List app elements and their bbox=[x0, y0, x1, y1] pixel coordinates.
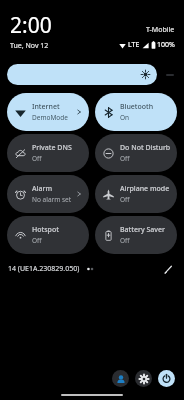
staticText: Off bbox=[120, 236, 130, 245]
staticText: LTE bbox=[128, 40, 140, 50]
staticText: Private DNS bbox=[32, 143, 72, 153]
staticText: No alarm set bbox=[32, 195, 72, 204]
button[interactable]: Do Not Disturb bbox=[95, 134, 177, 172]
staticText: Alarm bbox=[32, 184, 53, 194]
staticText: 14 (UE1A.230829.050) bbox=[8, 264, 80, 274]
staticText: T-Mobile bbox=[146, 25, 175, 35]
staticText: Internet bbox=[32, 102, 60, 112]
button[interactable]: User bbox=[112, 370, 129, 387]
staticText: DemoMode bbox=[32, 113, 68, 122]
staticText: 100% bbox=[157, 40, 175, 50]
button[interactable]: Airplane mode bbox=[95, 175, 177, 213]
button[interactable]: Private DNS bbox=[7, 134, 89, 172]
staticText: Off bbox=[120, 195, 130, 204]
button[interactable]: Power bbox=[158, 370, 175, 387]
staticText: Airplane mode bbox=[120, 184, 170, 194]
staticText: Do Not Disturb bbox=[120, 143, 171, 153]
button[interactable]: Hotspot bbox=[7, 216, 89, 254]
button[interactable]: Brightness bbox=[7, 64, 157, 85]
staticText: 2:00 bbox=[10, 11, 52, 40]
staticText: Off bbox=[32, 236, 42, 245]
button[interactable]: Settings bbox=[135, 370, 152, 387]
staticText: On bbox=[120, 113, 130, 122]
button[interactable]: Bluetooth bbox=[95, 93, 177, 131]
staticText: Battery Saver bbox=[120, 225, 165, 235]
staticText: Off bbox=[120, 154, 130, 163]
button[interactable]: Alarm bbox=[7, 175, 89, 213]
staticText: Bluetooth bbox=[120, 102, 154, 112]
staticText: Hotspot bbox=[32, 225, 59, 235]
button[interactable]: Internet bbox=[7, 93, 89, 131]
button[interactable]: Edit tiles bbox=[160, 261, 176, 277]
staticText: Tue, Nov 12 bbox=[10, 41, 49, 51]
button[interactable]: Battery Saver bbox=[95, 216, 177, 254]
staticText: Off bbox=[32, 154, 42, 163]
